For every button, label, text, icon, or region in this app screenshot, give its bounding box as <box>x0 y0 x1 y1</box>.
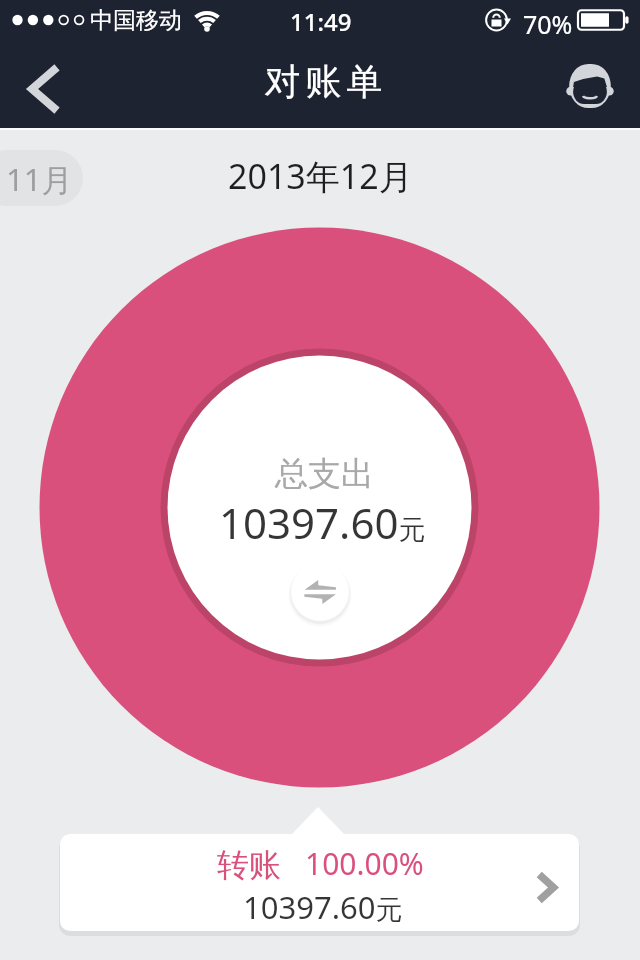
staticText: 总支出 <box>275 453 374 495</box>
staticText: 10397.60元 <box>219 494 426 551</box>
staticText: 100.00% <box>305 843 424 884</box>
staticText: 10397.60元 <box>243 886 403 928</box>
button[interactable]: 11月 <box>0 150 83 206</box>
staticText: 11月 <box>6 158 73 200</box>
button[interactable]: Profile <box>564 60 616 112</box>
button[interactable]: Switch currency <box>291 563 349 621</box>
staticText: 11:49 <box>290 5 352 38</box>
button[interactable]: Back <box>8 54 78 124</box>
staticText: 中国移动 <box>90 6 182 35</box>
staticText: 对账单 <box>262 59 385 104</box>
staticText: 70% <box>523 7 573 41</box>
button[interactable]: 转账 <box>60 834 579 931</box>
staticText: 转账 <box>217 845 281 885</box>
staticText: 2013年12月 <box>228 153 413 199</box>
